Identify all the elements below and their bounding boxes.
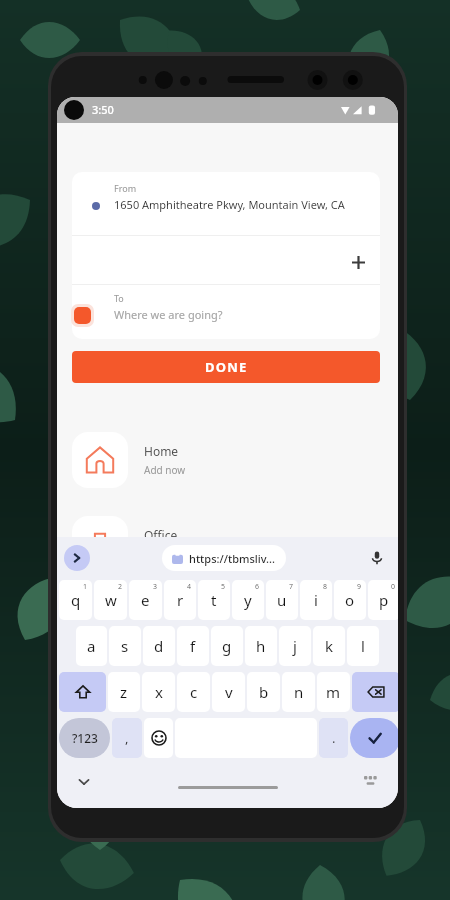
button[interactable]: m bbox=[317, 672, 350, 712]
button[interactable]: Backspace bbox=[352, 672, 398, 712]
button[interactable]: w bbox=[94, 580, 127, 620]
staticText: w bbox=[105, 590, 117, 610]
staticText: g bbox=[222, 636, 232, 656]
staticText: n bbox=[294, 682, 304, 702]
button[interactable]: e bbox=[129, 580, 162, 620]
staticText: d bbox=[154, 636, 164, 656]
staticText: 5 bbox=[221, 582, 226, 592]
button[interactable]: Office bbox=[72, 513, 380, 575]
button[interactable]: g bbox=[211, 626, 243, 666]
button[interactable]: c bbox=[177, 672, 210, 712]
staticText: a bbox=[87, 636, 96, 656]
staticText: 9 bbox=[357, 582, 362, 592]
staticText: 1650 Amphitheatre Pkwy, Mountain View, C… bbox=[114, 197, 376, 212]
staticText: 3 bbox=[153, 582, 158, 592]
button[interactable]: v bbox=[212, 672, 245, 712]
staticText: ?123 bbox=[72, 730, 98, 746]
button[interactable]: b bbox=[247, 672, 280, 712]
button[interactable]: Change keyboard bbox=[357, 769, 383, 795]
button[interactable]: Shift bbox=[59, 672, 106, 712]
button[interactable]: Enter bbox=[350, 718, 398, 758]
button[interactable]: Emoji bbox=[144, 718, 173, 758]
button[interactable]: z bbox=[108, 672, 140, 712]
button[interactable]: x bbox=[142, 672, 175, 712]
staticText: Add now bbox=[144, 547, 186, 561]
button[interactable]: Back bbox=[65, 161, 105, 201]
button[interactable]: f bbox=[177, 626, 209, 666]
button[interactable]: DONE bbox=[72, 351, 380, 383]
button[interactable]: l bbox=[347, 626, 379, 666]
button[interactable]: d bbox=[143, 626, 175, 666]
staticText: https://tbmsliv... bbox=[189, 551, 276, 566]
button[interactable]: u bbox=[266, 580, 298, 620]
staticText: c bbox=[190, 682, 198, 702]
staticText: m bbox=[326, 682, 341, 702]
staticText: 2 bbox=[118, 582, 123, 592]
staticText: q bbox=[71, 590, 81, 610]
button[interactable]: https://tbmsliv... bbox=[172, 545, 276, 571]
button[interactable]: p bbox=[368, 580, 398, 620]
staticText: r bbox=[177, 590, 184, 610]
staticText: j bbox=[293, 636, 297, 656]
staticText: 7 bbox=[289, 582, 294, 592]
staticText: . bbox=[332, 729, 336, 747]
staticText: l bbox=[361, 636, 365, 656]
button[interactable]: h bbox=[245, 626, 277, 666]
staticText: Where we are going? bbox=[114, 307, 223, 322]
staticText: x bbox=[155, 682, 163, 702]
staticText: From bbox=[114, 182, 137, 194]
staticText: , bbox=[125, 729, 129, 747]
staticText: v bbox=[225, 682, 233, 702]
staticText: t bbox=[211, 590, 217, 610]
button[interactable]: ?123 bbox=[59, 718, 110, 758]
button[interactable]: s bbox=[109, 626, 141, 666]
staticText: f bbox=[190, 636, 196, 656]
staticText: h bbox=[256, 636, 266, 656]
button[interactable]: y bbox=[232, 580, 264, 620]
staticText: To bbox=[114, 292, 124, 304]
button[interactable]: t bbox=[198, 580, 230, 620]
staticText: b bbox=[259, 682, 269, 702]
button[interactable]: r bbox=[164, 580, 196, 620]
staticText: DONE bbox=[205, 358, 248, 376]
staticText: 3:50 bbox=[92, 102, 114, 117]
staticText: 4 bbox=[187, 582, 192, 592]
staticText: o bbox=[345, 590, 355, 610]
button[interactable]: o bbox=[334, 580, 366, 620]
button[interactable]: Add stop bbox=[340, 244, 376, 280]
staticText: p bbox=[379, 590, 389, 610]
button[interactable]: j bbox=[279, 626, 311, 666]
button[interactable]: , bbox=[112, 718, 142, 758]
button[interactable]: n bbox=[282, 672, 315, 712]
button[interactable]: Home bbox=[72, 429, 380, 491]
staticText: z bbox=[120, 682, 128, 702]
button[interactable]: . bbox=[319, 718, 348, 758]
staticText: Home bbox=[144, 443, 179, 459]
staticText: e bbox=[141, 590, 150, 610]
staticText: i bbox=[314, 590, 318, 610]
staticText: 0 bbox=[391, 582, 396, 592]
staticText: y bbox=[244, 590, 252, 610]
button[interactable]: a bbox=[76, 626, 107, 666]
staticText: u bbox=[277, 590, 287, 610]
staticText: Office bbox=[144, 527, 178, 543]
button[interactable]: Voice input bbox=[362, 543, 392, 573]
button[interactable]: k bbox=[313, 626, 345, 666]
staticText: s bbox=[121, 636, 129, 656]
staticText: k bbox=[325, 636, 334, 656]
staticText: Add now bbox=[144, 463, 186, 477]
button[interactable]: i bbox=[300, 580, 332, 620]
staticText: 1 bbox=[83, 582, 88, 592]
button[interactable]: q bbox=[59, 580, 92, 620]
staticText: 6 bbox=[255, 582, 260, 592]
staticText: 8 bbox=[323, 582, 328, 592]
button[interactable]: Hide keyboard bbox=[71, 769, 97, 795]
button[interactable]: More suggestions bbox=[64, 545, 90, 571]
